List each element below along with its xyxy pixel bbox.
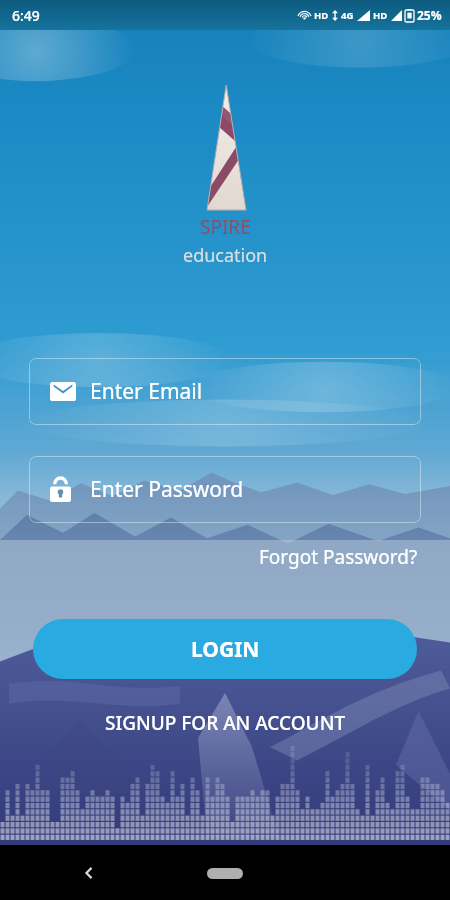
button[interactable]: SIGNUP FOR AN ACCOUNT [99,707,352,739]
button[interactable]: LOGIN [33,619,417,679]
staticText: Enter Email [90,377,203,406]
staticText: HD [314,9,329,22]
staticText: education [183,243,268,268]
button[interactable]: Forgot Password? [257,542,420,572]
staticText: 6:49 [12,6,40,25]
staticText: LOGIN [191,635,260,664]
staticText: HD [373,9,388,22]
button[interactable]: Enter Email [29,358,421,425]
staticText: 4G [341,9,354,22]
button[interactable]: Home [199,860,251,886]
button[interactable]: Enter Password [29,456,421,523]
staticText: 25% [417,7,442,23]
staticText: Enter Password [90,475,244,504]
staticText: SIGNUP FOR AN ACCOUNT [105,710,346,736]
staticText: Forgot Password? [259,544,418,570]
button[interactable]: Back [72,856,106,890]
staticText: SPIRE [200,214,251,240]
